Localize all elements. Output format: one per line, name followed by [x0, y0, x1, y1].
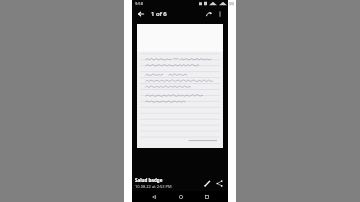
staticText: 1 of 6	[151, 10, 167, 18]
button[interactable]: Edit	[201, 177, 213, 189]
button[interactable]: Home	[175, 191, 186, 202]
staticText: 9:58	[135, 1, 143, 6]
button[interactable]: Recent apps	[201, 191, 212, 202]
button[interactable]: Share	[213, 177, 225, 189]
button[interactable]	[137, 24, 223, 148]
staticText: Salud badge	[135, 177, 163, 183]
button[interactable]: Redo	[203, 8, 214, 19]
button[interactable]: Back	[135, 8, 146, 19]
button[interactable]: Back	[148, 191, 159, 202]
button[interactable]: More options	[214, 8, 225, 19]
staticText: 10.08.22 at 2:53 PM	[135, 184, 172, 189]
